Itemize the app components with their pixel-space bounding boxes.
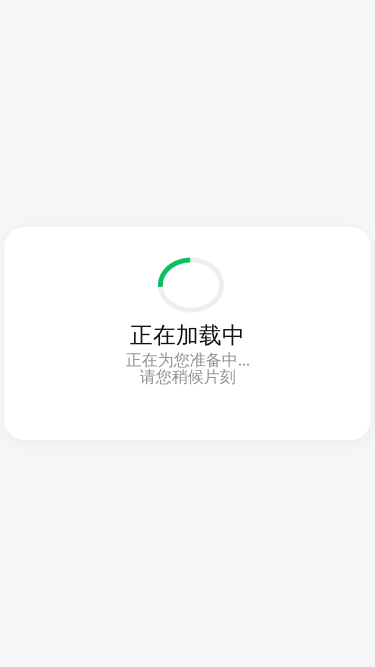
staticText: 正在加载中 bbox=[130, 322, 245, 349]
staticText: 正在为您准备中... 请您稍候片刻 bbox=[125, 349, 249, 387]
